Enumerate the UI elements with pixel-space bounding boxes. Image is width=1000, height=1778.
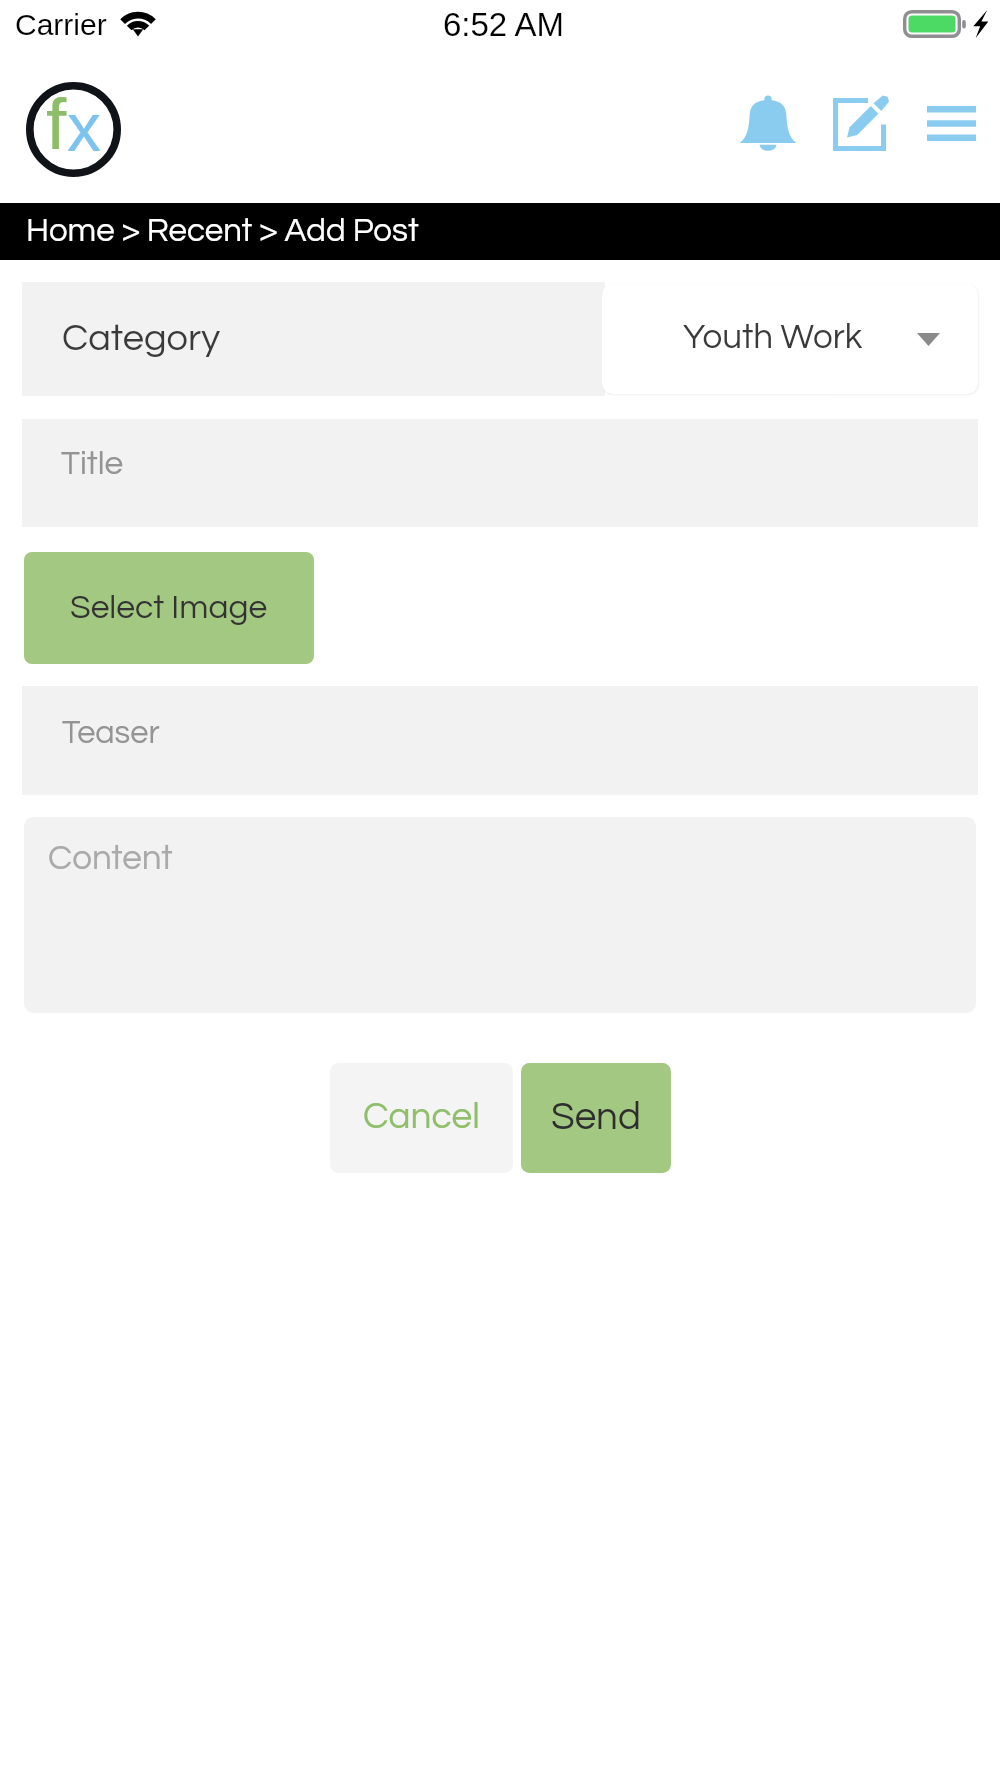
button[interactable]: Home > Recent > Add Post (0, 203, 1000, 260)
staticText: Youth Work (683, 319, 863, 355)
staticText: Category (62, 319, 221, 358)
staticText: f (46, 83, 67, 165)
button[interactable]: Home logo (26, 82, 121, 177)
staticText: Home > Recent > Add Post (26, 214, 419, 248)
button[interactable]: Teaser (22, 686, 978, 795)
staticText: Select Image (70, 590, 268, 625)
button[interactable]: Youth Work (602, 284, 978, 394)
staticText: 6:52 AM (443, 6, 565, 43)
staticText: Carrier (15, 8, 107, 42)
staticText: x (67, 89, 101, 165)
staticText: Teaser (62, 716, 160, 749)
button[interactable]: Category (22, 282, 605, 396)
staticText: Send (551, 1097, 641, 1137)
button[interactable]: Select Image (24, 552, 314, 664)
button[interactable]: Compose post (833, 98, 893, 154)
staticText: Cancel (363, 1098, 480, 1136)
button[interactable]: Cancel (330, 1063, 513, 1173)
button[interactable]: Send (521, 1063, 671, 1173)
button[interactable]: Menu (927, 106, 976, 141)
button[interactable]: Notifications (739, 94, 797, 152)
staticText: Title (61, 447, 124, 482)
staticText: Content (48, 840, 173, 876)
button[interactable]: Title (22, 419, 978, 527)
button[interactable]: Content (24, 817, 976, 1013)
